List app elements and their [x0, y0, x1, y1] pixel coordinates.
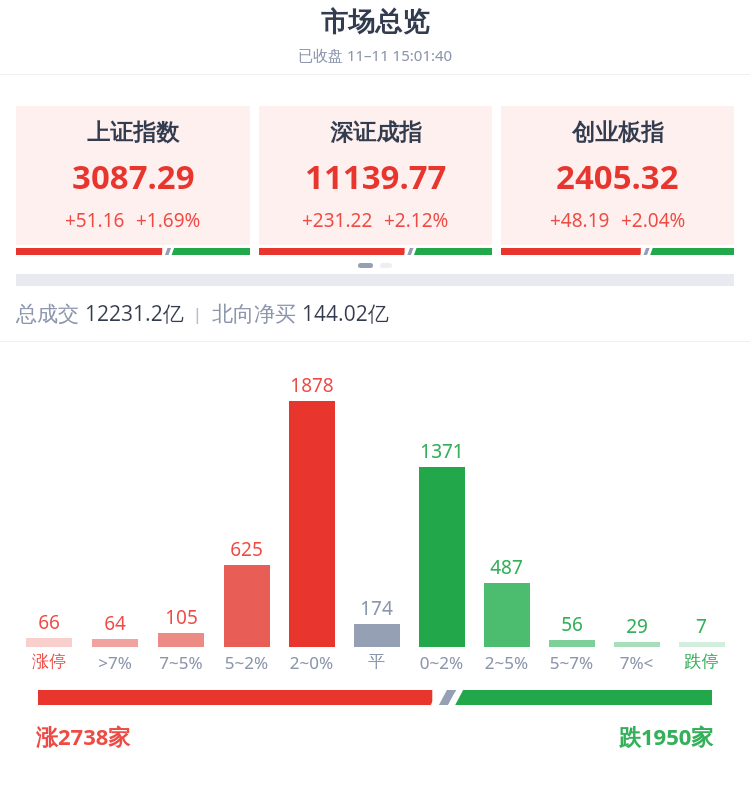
button[interactable]: 625 [214, 342, 279, 647]
staticText: 56 [561, 611, 583, 637]
staticText: 深证成指 [330, 118, 422, 147]
staticText: 2~5% [474, 651, 539, 674]
staticText: 2405.32 [556, 154, 679, 199]
staticText: 7~5% [148, 651, 214, 674]
staticText: 总成交 [16, 299, 85, 328]
staticText: 创业板指 [572, 118, 664, 147]
staticText: 11139.77 [305, 154, 447, 199]
button[interactable]: 174 [344, 342, 409, 647]
staticText: 5~7% [539, 651, 604, 674]
staticText: +48.19 [550, 207, 610, 233]
staticText: +51.16 [65, 207, 125, 233]
button[interactable]: 66 [16, 342, 82, 647]
staticText: +231.22 [302, 207, 373, 233]
staticText: 3087.29 [72, 154, 195, 199]
button[interactable]: 1878 [279, 342, 344, 647]
button[interactable]: 64 [82, 342, 148, 647]
staticText: 625 [230, 536, 263, 562]
staticText: 市场总览 [321, 5, 429, 39]
staticText: 涨停 [16, 651, 82, 672]
button[interactable]: 56 [539, 342, 604, 647]
staticText: 涨2738家 [36, 721, 131, 751]
button[interactable]: 总成交 [0, 286, 750, 341]
staticText: 7 [696, 613, 707, 639]
button[interactable]: 105 [148, 342, 214, 647]
button[interactable]: 7 [669, 342, 734, 647]
staticText: 12231.2亿 [85, 299, 184, 328]
staticText: | [184, 302, 212, 325]
staticText: 64 [104, 610, 126, 636]
staticText: 144.02亿 [302, 299, 389, 328]
staticText: 29 [626, 613, 648, 639]
staticText: 跌停 [669, 651, 734, 672]
staticText: 上证指数 [87, 118, 179, 147]
staticText: 0~2% [409, 651, 474, 674]
staticText: 跌1950家 [619, 721, 714, 751]
staticText: 2~0% [279, 651, 344, 674]
staticText: +2.12% [384, 207, 449, 233]
staticText: 5~2% [214, 651, 279, 674]
staticText: 北向净买 [212, 299, 302, 328]
staticText: 174 [360, 595, 393, 621]
button[interactable]: 上证指数 [16, 106, 250, 255]
staticText: 已收盘 11–11 15:01:40 [298, 45, 453, 65]
staticText: +1.69% [136, 207, 201, 233]
staticText: +2.04% [621, 207, 686, 233]
staticText: 66 [38, 609, 60, 635]
staticText: 平 [344, 651, 409, 672]
button[interactable]: 创业板指 [501, 106, 734, 255]
staticText: 1878 [290, 372, 334, 398]
button[interactable]: 487 [474, 342, 539, 647]
staticText: 7%< [604, 651, 669, 674]
staticText: 1371 [420, 438, 464, 464]
staticText: >7% [82, 651, 148, 674]
staticText: 487 [490, 554, 523, 580]
staticText: 105 [165, 604, 198, 630]
button[interactable]: 29 [604, 342, 669, 647]
button[interactable]: 深证成指 [259, 106, 492, 255]
button[interactable]: 1371 [409, 342, 474, 647]
